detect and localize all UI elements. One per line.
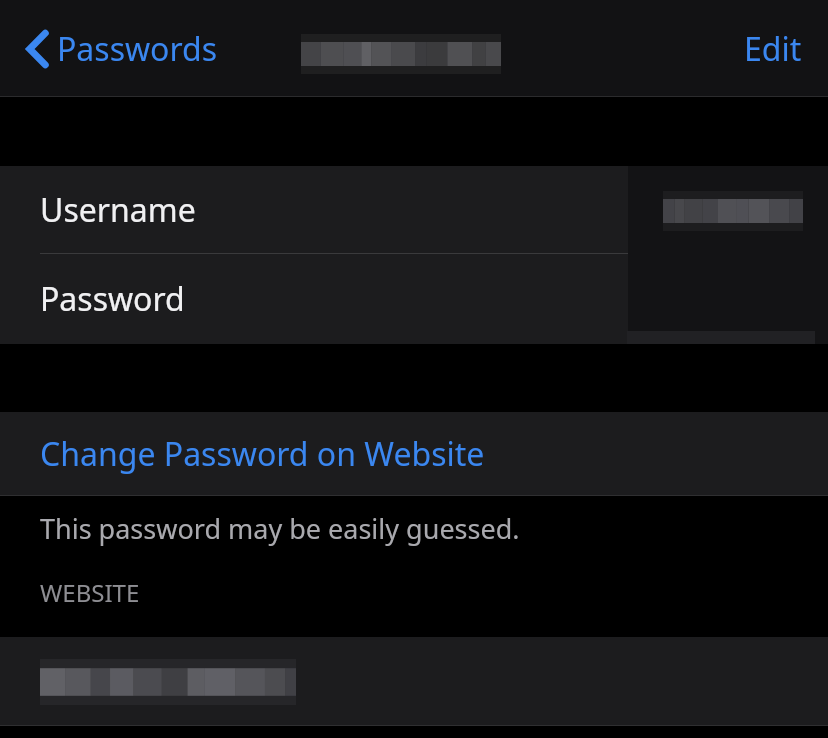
- button[interactable]: Change Password on Website: [0, 412, 828, 496]
- staticText: WEBSITE: [40, 576, 140, 609]
- staticText: Passwords: [57, 27, 218, 71]
- button[interactable]: Back: [0, 17, 230, 81]
- staticText: This password may be easily guessed.: [40, 510, 520, 547]
- button[interactable]: Username: [0, 166, 828, 253]
- staticText: Password: [40, 277, 185, 321]
- staticText: Change Password on Website: [40, 432, 485, 476]
- staticText: Edit: [744, 27, 802, 71]
- other: Back: [26, 31, 49, 67]
- button[interactable]: Edit: [718, 13, 828, 85]
- staticText: Username: [40, 188, 196, 232]
- button[interactable]: Password: [0, 254, 828, 344]
- button[interactable]: [0, 637, 828, 726]
